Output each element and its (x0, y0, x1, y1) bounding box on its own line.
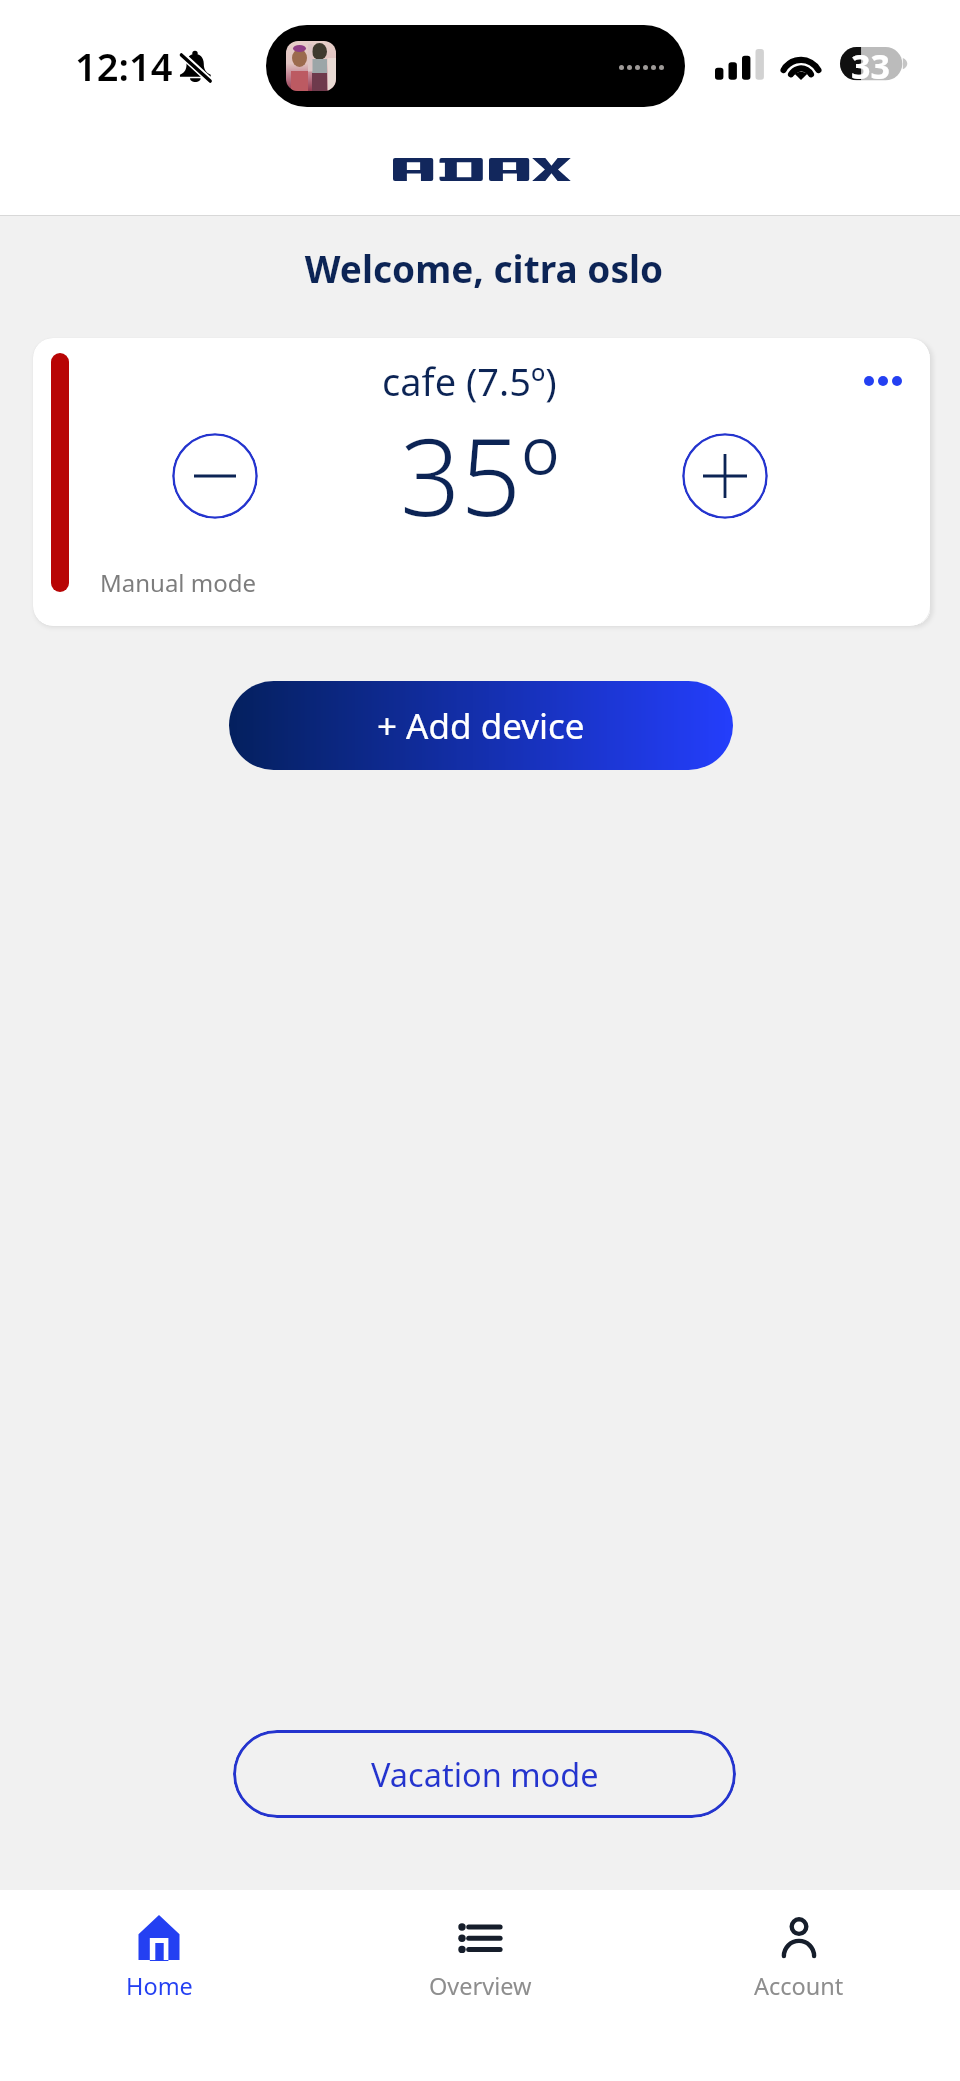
button[interactable]: More options (844, 356, 922, 406)
staticText: cafe (7.5º) (382, 355, 557, 407)
button[interactable]: cafe (7.5º) (33, 338, 930, 626)
staticText: Home (126, 1970, 193, 2002)
button[interactable]: Increase temperature (682, 433, 768, 519)
button[interactable]: Overview (380, 1900, 580, 2002)
staticText: 33 (851, 43, 890, 89)
staticText: Account (754, 1970, 844, 2002)
staticText: Welcome, citra oslo (4, 243, 960, 293)
button[interactable]: Vacation mode (233, 1730, 736, 1818)
staticText: 12:14 (75, 40, 173, 92)
button[interactable]: Account (699, 1900, 899, 2002)
staticText: Overview (429, 1970, 532, 2002)
button[interactable]: Home (59, 1900, 259, 2002)
staticText: Manual mode (100, 566, 257, 599)
staticText: 35º (400, 403, 560, 547)
button[interactable]: + Add device (229, 681, 733, 770)
button[interactable]: Decrease temperature (172, 433, 258, 519)
staticText: + Add device (377, 702, 585, 750)
staticText: Vacation mode (371, 1752, 599, 1796)
